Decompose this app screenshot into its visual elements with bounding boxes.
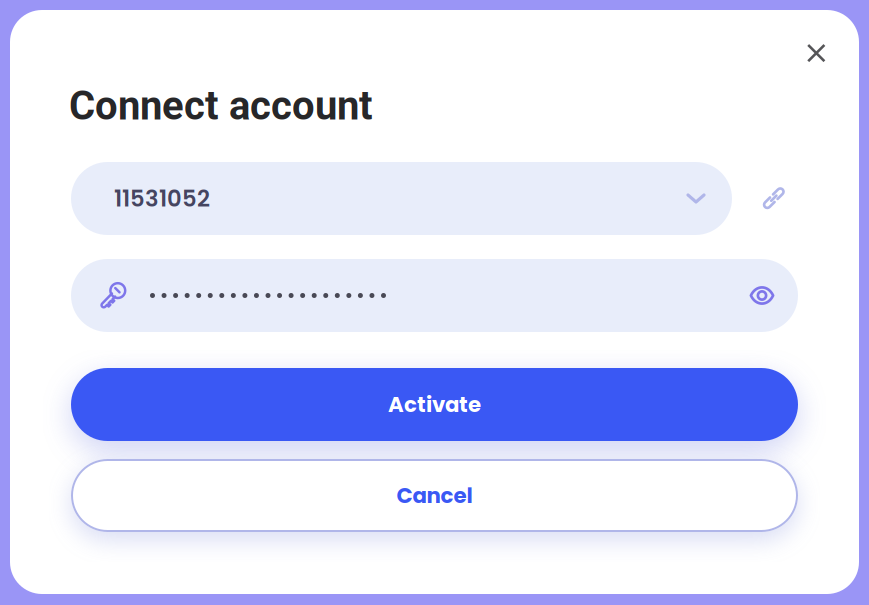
staticText: Connect account [69,82,373,129]
button[interactable]: Link account [748,172,800,224]
staticText: 11531052 [114,183,210,214]
staticText: Activate [388,390,481,419]
button[interactable]: Cancel [71,459,798,532]
button[interactable]: Activate [71,368,798,441]
button[interactable]: Show password [740,273,784,317]
button[interactable]: Close [794,31,838,75]
staticText: Cancel [396,481,472,510]
button[interactable]: 11531052 [71,162,732,235]
